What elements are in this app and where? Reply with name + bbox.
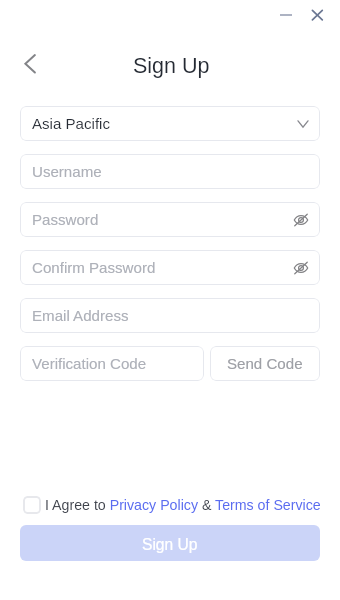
staticText: Username <box>32 163 102 180</box>
button[interactable]: I agree to the terms checkbox <box>23 496 41 514</box>
staticText: Sign Up <box>142 536 198 553</box>
button[interactable]: Verification Code <box>20 346 204 381</box>
staticText: Confirm Password <box>32 259 156 276</box>
staticText: I Agree to Privacy Policy & Terms of Ser… <box>45 497 321 513</box>
button[interactable]: Show password <box>293 212 309 228</box>
staticText: Email Address <box>32 307 129 324</box>
staticText: Sign Up <box>133 54 210 78</box>
staticText: Send Code <box>227 355 303 372</box>
staticText: Verification Code <box>32 355 147 372</box>
button[interactable]: Sign Up <box>20 525 320 561</box>
staticText: Password <box>32 211 99 228</box>
button[interactable]: Password <box>20 202 320 237</box>
button[interactable]: Minimize <box>274 5 298 25</box>
button[interactable]: Show password <box>293 260 309 276</box>
button[interactable]: Asia Pacific <box>20 106 320 141</box>
button[interactable]: Back <box>16 48 48 80</box>
button[interactable]: Send Code <box>210 346 320 381</box>
button[interactable]: Email Address <box>20 298 320 333</box>
button[interactable]: Confirm Password <box>20 250 320 285</box>
staticText: Asia Pacific <box>32 115 111 132</box>
button[interactable]: Username <box>20 154 320 189</box>
button[interactable]: Close <box>305 5 329 25</box>
